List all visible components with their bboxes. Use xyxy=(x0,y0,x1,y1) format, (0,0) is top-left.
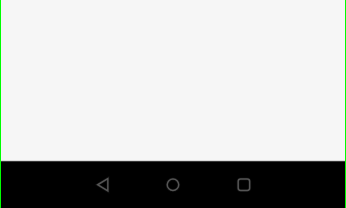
button[interactable]: Recent apps xyxy=(227,161,262,208)
button[interactable]: Back xyxy=(85,161,120,208)
button[interactable]: Home xyxy=(156,161,191,208)
